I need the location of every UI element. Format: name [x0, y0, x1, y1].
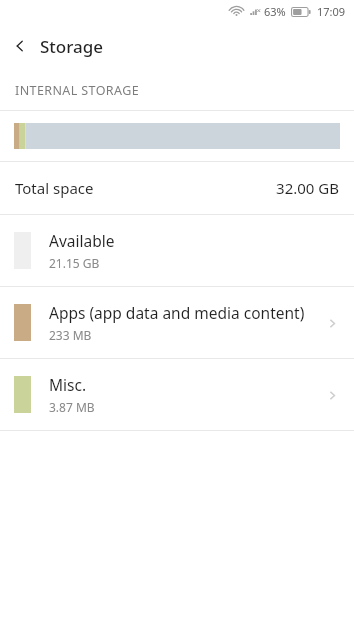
- staticText: Misc.: [49, 374, 87, 395]
- staticText: 3.87 MB: [49, 399, 95, 415]
- staticText: INTERNAL STORAGE: [15, 82, 139, 99]
- button[interactable]: Apps (app data and media content): [0, 287, 354, 358]
- staticText: Storage: [40, 35, 104, 58]
- staticText: 32.00 GB: [276, 178, 339, 198]
- staticText: Total space: [15, 178, 94, 198]
- button[interactable]: Total space: [0, 162, 354, 214]
- staticText: Apps (app data and media content): [49, 302, 305, 323]
- button[interactable]: Back: [0, 26, 40, 66]
- button[interactable]: Available: [0, 215, 354, 286]
- staticText: 233 MB: [49, 327, 92, 343]
- staticText: 21.15 GB: [49, 255, 100, 271]
- button[interactable]: Misc.: [0, 359, 354, 430]
- staticText: 63%: [264, 4, 286, 19]
- staticText: 17:09: [317, 4, 346, 19]
- staticText: Available: [49, 230, 115, 251]
